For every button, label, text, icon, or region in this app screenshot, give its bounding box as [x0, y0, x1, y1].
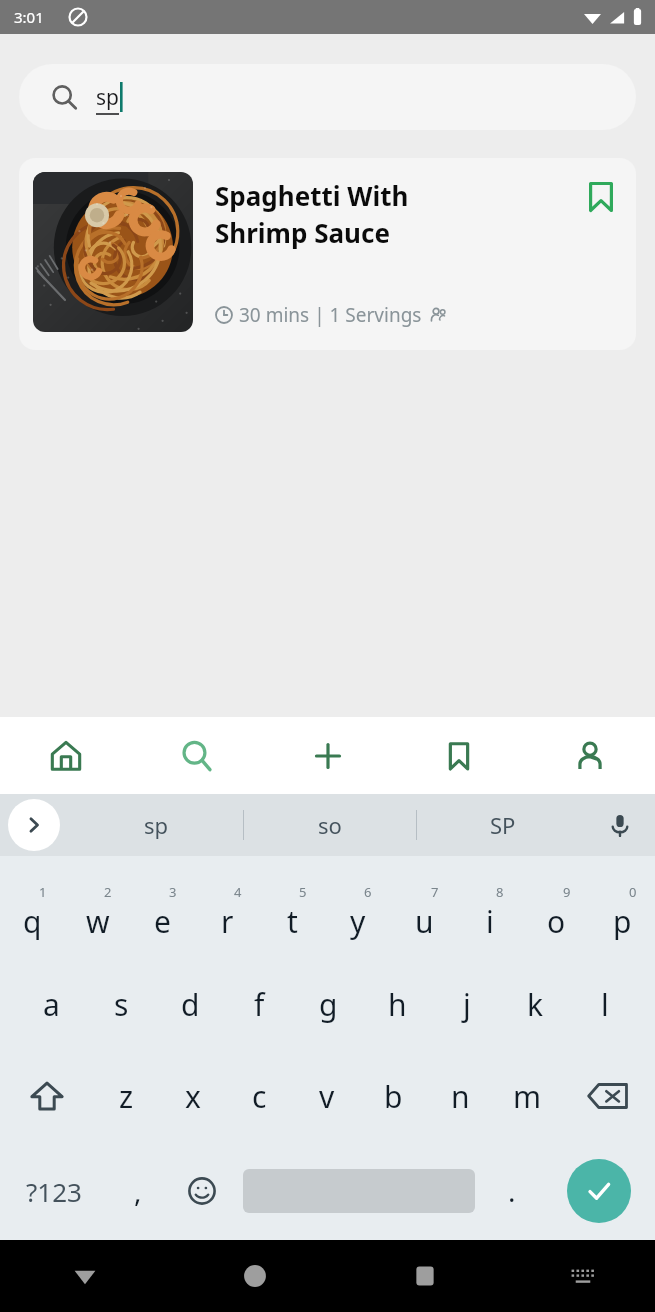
staticText: s: [114, 984, 129, 1025]
staticText: u: [415, 901, 434, 942]
staticText: i: [486, 901, 494, 942]
staticText: 6: [364, 883, 372, 901]
staticText: sp: [96, 83, 119, 112]
button[interactable]: c: [226, 1050, 293, 1142]
button[interactable]: sp: [70, 794, 243, 856]
staticText: e: [154, 901, 171, 942]
button[interactable]: Backspace: [561, 1050, 655, 1142]
staticText: h: [388, 984, 407, 1025]
button[interactable]: Saved: [393, 717, 524, 794]
staticText: 5: [299, 883, 307, 901]
button[interactable]: Emoji: [168, 1142, 235, 1240]
staticText: 1: [39, 883, 47, 901]
staticText: 7: [431, 883, 439, 901]
button[interactable]: 9: [523, 866, 589, 958]
button[interactable]: Spaghetti With Shrimp Sauce: [19, 158, 636, 350]
staticText: Spaghetti With Shrimp Sauce: [215, 178, 409, 251]
button[interactable]: l: [570, 958, 639, 1050]
staticText: f: [254, 984, 265, 1025]
staticText: so: [318, 810, 342, 840]
staticText: w: [86, 901, 110, 942]
button[interactable]: k: [501, 958, 570, 1050]
button[interactable]: so: [244, 794, 416, 856]
button[interactable]: x: [159, 1050, 226, 1142]
button[interactable]: v: [293, 1050, 360, 1142]
button[interactable]: Bookmark recipe: [584, 182, 618, 216]
button[interactable]: [235, 1142, 482, 1240]
button[interactable]: Voice input: [599, 804, 641, 846]
staticText: m: [513, 1076, 542, 1117]
staticText: q: [23, 901, 42, 942]
button[interactable]: Keyboard switcher: [510, 1240, 655, 1312]
staticText: 8: [496, 883, 504, 901]
staticText: sp: [144, 810, 169, 840]
button[interactable]: Search: [131, 717, 262, 794]
staticText: 3:01: [14, 7, 44, 27]
staticText: .: [508, 1172, 516, 1210]
staticText: b: [384, 1076, 403, 1117]
button[interactable]: Profile: [524, 717, 655, 794]
button[interactable]: Recents: [340, 1240, 510, 1312]
button[interactable]: 6: [325, 866, 391, 958]
staticText: k: [527, 984, 544, 1025]
staticText: x: [185, 1076, 201, 1117]
button[interactable]: d: [156, 958, 225, 1050]
button[interactable]: Enter: [542, 1142, 655, 1240]
button[interactable]: a: [16, 958, 86, 1050]
staticText: y: [350, 901, 366, 942]
button[interactable]: f: [225, 958, 294, 1050]
button[interactable]: Home: [170, 1240, 340, 1312]
button[interactable]: b: [360, 1050, 427, 1142]
staticText: o: [547, 901, 566, 942]
staticText: v: [319, 1076, 335, 1117]
staticText: 0: [629, 883, 637, 901]
button[interactable]: ?123: [0, 1142, 108, 1240]
button[interactable]: 7: [391, 866, 457, 958]
button[interactable]: Back: [0, 1240, 170, 1312]
staticText: 2: [104, 883, 112, 901]
button[interactable]: SP: [417, 794, 589, 856]
button[interactable]: ,: [108, 1142, 168, 1240]
staticText: p: [613, 901, 632, 942]
button[interactable]: 8: [457, 866, 523, 958]
staticText: z: [119, 1076, 134, 1117]
button[interactable]: .: [482, 1142, 542, 1240]
button[interactable]: j: [432, 958, 501, 1050]
button[interactable]: 5: [260, 866, 325, 958]
button[interactable]: h: [363, 958, 432, 1050]
button[interactable]: s: [86, 958, 156, 1050]
button[interactable]: z: [93, 1050, 159, 1142]
staticText: SP: [490, 810, 516, 840]
button[interactable]: g: [294, 958, 363, 1050]
staticText: a: [43, 984, 60, 1025]
staticText: ?123: [26, 1174, 82, 1209]
staticText: c: [252, 1076, 267, 1117]
button[interactable]: n: [427, 1050, 494, 1142]
button[interactable]: More suggestions: [8, 799, 60, 851]
staticText: 9: [563, 883, 571, 901]
staticText: n: [451, 1076, 470, 1117]
button[interactable]: Home: [0, 717, 131, 794]
button[interactable]: 4: [195, 866, 260, 958]
staticText: d: [181, 984, 200, 1025]
staticText: t: [287, 901, 298, 942]
staticText: 4: [234, 883, 242, 901]
staticText: r: [221, 901, 234, 942]
button[interactable]: Add recipe: [262, 717, 393, 794]
button[interactable]: 1: [0, 866, 65, 958]
button[interactable]: 2: [65, 866, 130, 958]
staticText: 30 mins | 1 Servings: [239, 302, 422, 328]
button[interactable]: sp: [19, 64, 636, 130]
button[interactable]: m: [494, 1050, 561, 1142]
staticText: g: [319, 984, 338, 1025]
staticText: j: [463, 984, 471, 1025]
staticText: l: [601, 984, 609, 1025]
button[interactable]: Shift: [0, 1050, 93, 1142]
button[interactable]: 3: [130, 866, 195, 958]
staticText: 3: [169, 883, 177, 901]
staticText: ,: [134, 1172, 142, 1210]
button[interactable]: 0: [589, 866, 655, 958]
